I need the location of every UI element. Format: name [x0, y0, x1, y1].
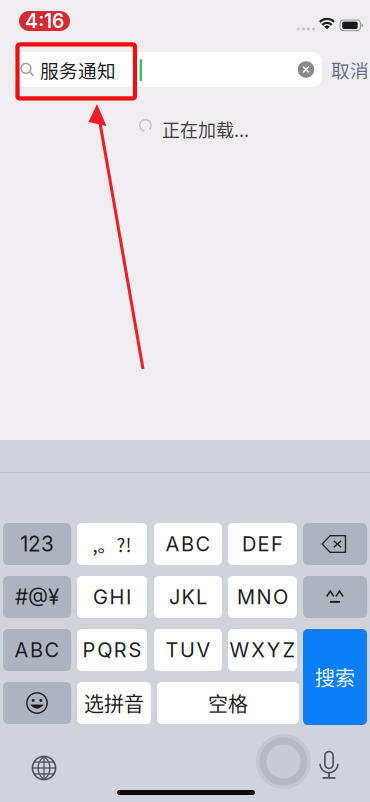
staticText: 123: [20, 531, 54, 556]
button[interactable]: TUV: [154, 629, 222, 671]
button[interactable]: ABC: [154, 523, 222, 565]
button[interactable]: DEF: [228, 523, 297, 565]
staticText: 4:16: [25, 9, 64, 33]
button[interactable]: ABC: [3, 629, 71, 671]
staticText: TUV: [165, 638, 211, 662]
button[interactable]: 123: [3, 523, 71, 565]
button[interactable]: Dictate: [309, 743, 349, 787]
staticText: WXYZ: [230, 638, 295, 662]
staticText: 服务通知: [40, 56, 116, 83]
button[interactable]: Clear text: [290, 52, 322, 87]
button[interactable]: Switch keyboard: [24, 748, 64, 788]
button[interactable]: #@¥: [3, 576, 71, 618]
staticText: ABC: [165, 532, 211, 556]
button[interactable]: ,。?!: [77, 523, 147, 565]
staticText: PQRS: [83, 638, 141, 662]
button[interactable]: GHI: [77, 576, 147, 618]
button[interactable]: 取消: [330, 52, 370, 87]
staticText: 搜索: [315, 662, 355, 691]
staticText: ,。?!: [92, 530, 131, 557]
staticText: 取消: [331, 56, 369, 83]
button[interactable]: 选拼音: [77, 682, 151, 724]
staticText: MNO: [237, 585, 288, 609]
button[interactable]: WXYZ: [228, 629, 297, 671]
staticText: ABC: [14, 638, 60, 662]
button[interactable]: Emoji: [3, 682, 71, 724]
button[interactable]: Delete: [303, 523, 367, 565]
staticText: DEF: [242, 532, 283, 556]
staticText: 空格: [208, 688, 248, 717]
button[interactable]: 服务通知: [14, 52, 322, 87]
button[interactable]: PQRS: [77, 629, 147, 671]
button[interactable]: MNO: [228, 576, 297, 618]
button[interactable]: Kaomoji: [303, 576, 367, 618]
staticText: JKL: [169, 585, 207, 609]
button[interactable]: 搜索: [303, 629, 367, 725]
staticText: 正在加载...: [162, 116, 249, 142]
staticText: GHI: [93, 585, 131, 609]
staticText: 选拼音: [84, 688, 144, 717]
button[interactable]: 空格: [157, 682, 299, 724]
staticText: #@¥: [15, 584, 59, 609]
button[interactable]: JKL: [154, 576, 222, 618]
